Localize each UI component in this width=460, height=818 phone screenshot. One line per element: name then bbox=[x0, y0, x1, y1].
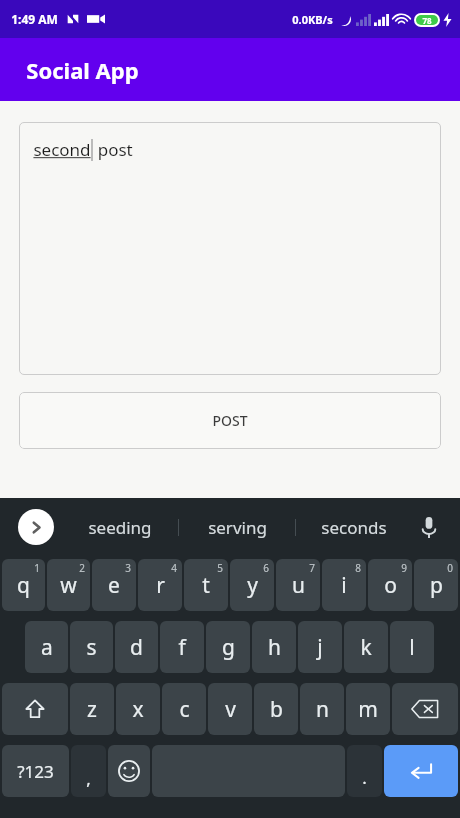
staticText: 4 bbox=[171, 561, 177, 575]
staticText: seeding bbox=[88, 516, 152, 539]
staticText: b bbox=[270, 695, 283, 724]
staticText: 2 bbox=[79, 561, 85, 575]
staticText: c bbox=[179, 695, 190, 724]
staticText: a bbox=[41, 633, 53, 662]
button[interactable]: u bbox=[276, 559, 320, 611]
staticText: 0 bbox=[447, 561, 453, 575]
staticText: . bbox=[362, 766, 367, 789]
button[interactable]: seconds bbox=[296, 505, 412, 549]
button[interactable]: i bbox=[322, 559, 366, 611]
button[interactable]: . bbox=[347, 745, 382, 797]
staticText: ?123 bbox=[17, 760, 54, 783]
staticText: q bbox=[17, 571, 30, 600]
button[interactable]: d bbox=[115, 621, 158, 673]
staticText: f bbox=[178, 633, 186, 662]
button[interactable]: e bbox=[92, 559, 136, 611]
button[interactable]: h bbox=[252, 621, 296, 673]
button[interactable]: l bbox=[390, 621, 434, 673]
button[interactable]: q bbox=[2, 559, 45, 611]
staticText: POST bbox=[212, 411, 248, 430]
staticText: 9 bbox=[401, 561, 407, 575]
staticText: m bbox=[358, 695, 378, 724]
button[interactable]: ?123 bbox=[2, 745, 69, 797]
staticText: w bbox=[60, 571, 77, 600]
staticText: Social App bbox=[26, 55, 139, 85]
button[interactable]: Backspace bbox=[392, 683, 458, 735]
staticText: s bbox=[86, 633, 97, 662]
button[interactable]: Emoji bbox=[108, 745, 150, 797]
button[interactable]: x bbox=[116, 683, 160, 735]
staticText: h bbox=[268, 633, 281, 662]
button[interactable]: second bbox=[19, 122, 441, 375]
button[interactable]: w bbox=[47, 559, 90, 611]
button[interactable]: serving bbox=[179, 505, 295, 549]
staticText: 78 bbox=[422, 15, 432, 25]
staticText: 0.0KB/s bbox=[292, 12, 333, 27]
button[interactable]: z bbox=[70, 683, 114, 735]
button[interactable]: Voice input bbox=[412, 510, 446, 544]
staticText: second bbox=[33, 138, 91, 161]
staticText: e bbox=[108, 571, 120, 600]
button[interactable]: More suggestions bbox=[18, 509, 54, 545]
button[interactable]: r bbox=[138, 559, 182, 611]
staticText: r bbox=[156, 571, 165, 600]
button[interactable]: a bbox=[25, 621, 68, 673]
button[interactable]: j bbox=[298, 621, 342, 673]
staticText: 3 bbox=[125, 561, 131, 575]
button[interactable]: c bbox=[162, 683, 206, 735]
button[interactable]: p bbox=[414, 559, 458, 611]
button[interactable]: n bbox=[300, 683, 344, 735]
button[interactable]: Enter bbox=[384, 745, 458, 797]
button[interactable]: POST bbox=[19, 392, 441, 449]
button[interactable]: t bbox=[184, 559, 228, 611]
staticText: v bbox=[225, 695, 236, 724]
button[interactable]: , bbox=[71, 745, 106, 797]
staticText: 8 bbox=[355, 561, 361, 575]
button[interactable]: k bbox=[344, 621, 388, 673]
button[interactable]: b bbox=[254, 683, 298, 735]
staticText: serving bbox=[208, 516, 267, 539]
staticText: n bbox=[316, 695, 329, 724]
button[interactable]: y bbox=[230, 559, 274, 611]
staticText: 1 bbox=[34, 561, 40, 575]
button[interactable]: f bbox=[160, 621, 204, 673]
button[interactable]: seeding bbox=[62, 505, 178, 549]
staticText: 6 bbox=[263, 561, 269, 575]
staticText: t bbox=[202, 571, 210, 600]
staticText: 7 bbox=[309, 561, 315, 575]
staticText: k bbox=[360, 633, 372, 662]
button[interactable]: Social App bbox=[0, 38, 460, 101]
staticText: u bbox=[292, 571, 305, 600]
staticText: p bbox=[430, 571, 443, 600]
button[interactable]: Shift bbox=[2, 683, 68, 735]
staticText: g bbox=[222, 633, 235, 662]
staticText: l bbox=[409, 633, 415, 662]
staticText: j bbox=[317, 633, 323, 662]
button[interactable]: v bbox=[208, 683, 252, 735]
staticText: o bbox=[384, 571, 397, 600]
staticText: 5 bbox=[217, 561, 223, 575]
staticText: 1:49 AM bbox=[11, 11, 58, 27]
button[interactable]: s bbox=[70, 621, 113, 673]
staticText: y bbox=[247, 571, 258, 600]
staticText: post bbox=[93, 138, 133, 161]
button[interactable]: o bbox=[368, 559, 412, 611]
staticText: , bbox=[86, 767, 91, 790]
staticText: i bbox=[341, 571, 347, 600]
staticText: x bbox=[132, 695, 144, 724]
staticText: seconds bbox=[321, 516, 387, 539]
staticText: z bbox=[87, 695, 97, 724]
button[interactable]: m bbox=[346, 683, 390, 735]
staticText: d bbox=[130, 633, 143, 662]
button[interactable]: g bbox=[206, 621, 250, 673]
